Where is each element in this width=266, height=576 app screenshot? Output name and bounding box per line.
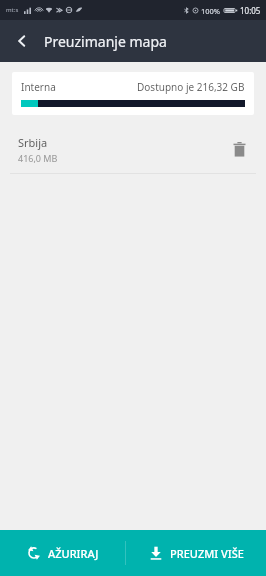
staticText: AŽURIRAJ <box>48 546 99 561</box>
staticText: Interna <box>21 80 56 94</box>
staticText: PREUZMI VIŠE <box>170 546 244 561</box>
button[interactable]: PREUZMI VIŠE <box>126 530 266 576</box>
button[interactable]: Back <box>6 25 38 57</box>
staticText: Preuzimanje mapa <box>44 32 167 51</box>
staticText: Srbija <box>18 135 48 150</box>
staticText: mt:s <box>6 6 19 14</box>
button[interactable]: Interna <box>12 72 254 115</box>
button[interactable]: Delete <box>222 132 256 166</box>
staticText: 10:05 <box>240 5 261 16</box>
button[interactable]: AŽURIRAJ <box>0 530 125 576</box>
staticText: 100% <box>201 6 221 16</box>
staticText: Dostupno je 216,32 GB <box>137 80 245 94</box>
button[interactable]: Srbija <box>0 125 266 173</box>
staticText: 416,0 MB <box>18 152 58 164</box>
